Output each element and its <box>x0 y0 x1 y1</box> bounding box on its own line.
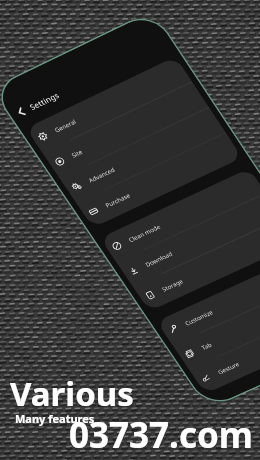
other: Back <box>13 105 29 119</box>
staticText: Site <box>70 148 84 159</box>
button[interactable]: General <box>25 56 192 153</box>
staticText: Various <box>10 371 134 416</box>
button[interactable]: Tab <box>173 278 260 370</box>
button[interactable]: Download <box>116 193 260 287</box>
button[interactable]: Back <box>9 31 173 125</box>
button[interactable]: Storage <box>133 218 260 311</box>
staticText: Purchase <box>104 191 132 209</box>
staticText: Tab <box>200 341 213 352</box>
staticText: Storage <box>160 277 185 293</box>
button[interactable]: Site <box>42 82 209 178</box>
button[interactable]: Gesture <box>189 302 260 394</box>
staticText: 03737.com <box>70 412 254 460</box>
staticText: Settings <box>27 90 61 112</box>
button[interactable]: Customize <box>156 253 260 345</box>
button[interactable]: Clean mode <box>100 168 260 262</box>
button[interactable]: Advanced <box>59 107 226 203</box>
staticText: Advanced <box>87 166 116 184</box>
staticText: Customize <box>183 308 214 327</box>
button[interactable]: Purchase <box>76 133 243 228</box>
staticText: Gesture <box>216 360 241 376</box>
staticText: 03737.com <box>69 411 253 459</box>
staticText: Many features <box>15 411 95 426</box>
staticText: Download <box>144 250 174 269</box>
staticText: Clean mode <box>127 223 162 244</box>
staticText: General <box>53 118 78 134</box>
